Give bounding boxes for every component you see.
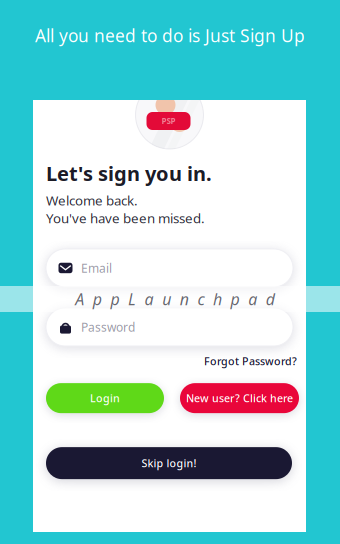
- button[interactable]: New user? Click here: [180, 383, 299, 413]
- button[interactable]: Login: [46, 383, 164, 413]
- staticText: Skip login!: [141, 456, 196, 470]
- staticText: All you need to do is Just Sign Up: [35, 24, 305, 47]
- staticText: PSP: [161, 116, 175, 126]
- button[interactable]: Forgot Password?: [46, 354, 297, 368]
- button[interactable]: Skip login!: [46, 447, 292, 479]
- staticText: You've have been missed.: [46, 209, 205, 227]
- staticText: Forgot Password?: [204, 354, 297, 368]
- staticText: New user? Click here: [186, 391, 293, 405]
- staticText: A p p L a u n c h p a d: [75, 288, 275, 310]
- staticText: Welcome back.: [46, 192, 138, 209]
- staticText: Password: [81, 319, 135, 335]
- staticText: Let's sign you in.: [46, 160, 212, 187]
- staticText: Email: [81, 260, 112, 276]
- staticText: Login: [90, 391, 120, 405]
